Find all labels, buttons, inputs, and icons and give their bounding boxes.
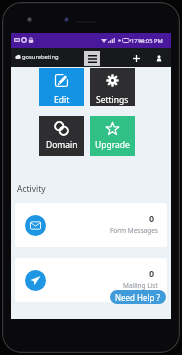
staticText: Edit: [54, 94, 70, 106]
staticText: gosurebeting: [22, 53, 59, 61]
staticText: Upgrade: [95, 139, 130, 151]
button[interactable]: Menu: [84, 51, 100, 66]
staticText: Domain: [46, 139, 78, 151]
staticText: Need Help ?: [115, 292, 161, 303]
button[interactable]: 0: [15, 258, 167, 302]
button[interactable]: Settings: [90, 68, 135, 106]
staticText: 0: [149, 212, 155, 224]
button[interactable]: Domain: [39, 116, 84, 156]
staticText: Activity: [17, 183, 46, 195]
staticText: Form Messages: [110, 226, 158, 235]
staticText: 0: [149, 267, 155, 279]
staticText: 17%: [131, 37, 143, 45]
staticText: Settings: [96, 94, 129, 106]
staticText: 4:05 PM: [141, 37, 163, 45]
button[interactable]: Account: [152, 51, 166, 65]
button[interactable]: Upgrade: [90, 116, 135, 156]
button[interactable]: Add: [129, 51, 143, 65]
button[interactable]: Edit: [39, 68, 84, 106]
button[interactable]: Need Help ?: [110, 290, 166, 304]
staticText: Mailing List: [123, 281, 158, 290]
button[interactable]: 0: [15, 203, 167, 247]
